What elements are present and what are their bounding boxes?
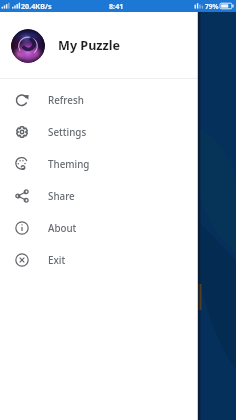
staticText: Theming — [48, 158, 90, 171]
staticText: Refresh — [48, 94, 84, 107]
staticText: 79% — [205, 2, 219, 11]
button[interactable]: Share — [0, 180, 198, 212]
staticText: 20.4KB/s — [21, 1, 52, 11]
staticText: My Puzzle — [58, 37, 121, 54]
staticText: Settings — [48, 126, 87, 139]
staticText: Share — [48, 190, 75, 203]
button[interactable]: Refresh — [0, 84, 198, 116]
button[interactable]: Exit — [0, 244, 198, 276]
staticText: 8:41 — [109, 1, 124, 11]
button[interactable]: Theming — [0, 148, 198, 180]
staticText: About — [48, 222, 77, 235]
button[interactable]: About — [0, 212, 198, 244]
button[interactable]: Settings — [0, 116, 198, 148]
staticText: Exit — [48, 254, 66, 267]
button[interactable]: My Puzzle — [0, 12, 198, 78]
